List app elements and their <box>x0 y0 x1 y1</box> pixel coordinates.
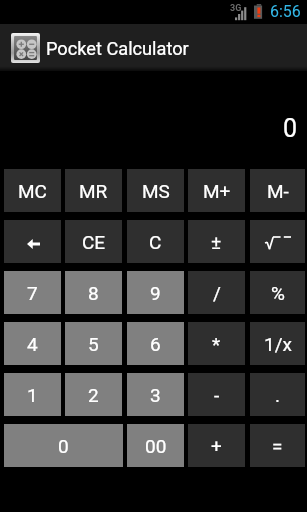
button[interactable]: M- <box>250 169 305 212</box>
button[interactable]: 1 <box>4 373 61 416</box>
staticText: C <box>149 231 162 253</box>
staticText: MR <box>79 180 108 202</box>
staticText: 2 <box>88 384 99 406</box>
button[interactable]: MR <box>65 169 122 212</box>
staticText: - <box>214 384 220 406</box>
staticText: 1 <box>27 384 38 406</box>
button[interactable]: 5 <box>65 322 122 365</box>
staticText: . <box>275 384 281 406</box>
button[interactable]: * <box>188 322 245 365</box>
staticText: * <box>212 333 221 355</box>
staticText: 1/x <box>264 333 292 355</box>
staticText: 0 <box>283 114 298 143</box>
staticText: 4 <box>27 333 38 355</box>
button[interactable]: 3 <box>127 373 184 416</box>
button[interactable]: % <box>250 271 305 314</box>
button[interactable]: 2 <box>65 373 122 416</box>
button[interactable]: 7 <box>4 271 61 314</box>
button[interactable]: 1/x <box>250 322 305 365</box>
staticText: 8 <box>88 282 99 304</box>
staticText: 00 <box>145 435 167 457</box>
button[interactable]: 00 <box>127 424 184 467</box>
button[interactable]: - <box>188 373 245 416</box>
staticText: MS <box>142 180 170 202</box>
staticText: 5 <box>88 333 99 355</box>
button[interactable]: 4 <box>4 322 61 365</box>
button[interactable]: MC <box>4 169 61 212</box>
staticText: CE <box>82 231 106 253</box>
staticText: Pocket Calculator <box>46 38 189 59</box>
staticText: % <box>271 282 285 304</box>
staticText: 0 <box>58 435 69 457</box>
button[interactable]: / <box>188 271 245 314</box>
button[interactable]: 9 <box>127 271 184 314</box>
button[interactable]: 6 <box>127 322 184 365</box>
staticText: 3G <box>230 3 242 14</box>
staticText: = <box>272 435 283 457</box>
button[interactable]: Plus or minus <box>188 220 245 263</box>
button[interactable]: 8 <box>65 271 122 314</box>
staticText: 7 <box>27 282 38 304</box>
button[interactable]: M+ <box>188 169 245 212</box>
button[interactable]: 0 <box>4 424 123 467</box>
button[interactable]: Backspace <box>4 220 61 263</box>
button[interactable]: . <box>250 373 305 416</box>
staticText: 6:56 <box>270 2 301 21</box>
button[interactable]: MS <box>127 169 184 212</box>
staticText: + <box>211 435 222 457</box>
staticText: ± <box>211 231 222 253</box>
staticText: MC <box>18 180 47 202</box>
staticText: 6 <box>150 333 161 355</box>
staticText: / <box>213 282 221 304</box>
staticText: 3 <box>150 384 161 406</box>
button[interactable]: + <box>188 424 245 467</box>
staticText: M+ <box>203 180 231 202</box>
button[interactable]: C <box>127 220 184 263</box>
staticText: 9 <box>150 282 161 304</box>
staticText: M- <box>267 180 289 202</box>
button[interactable]: Square root <box>250 220 305 263</box>
button[interactable]: CE <box>65 220 122 263</box>
button[interactable]: = <box>250 424 305 467</box>
